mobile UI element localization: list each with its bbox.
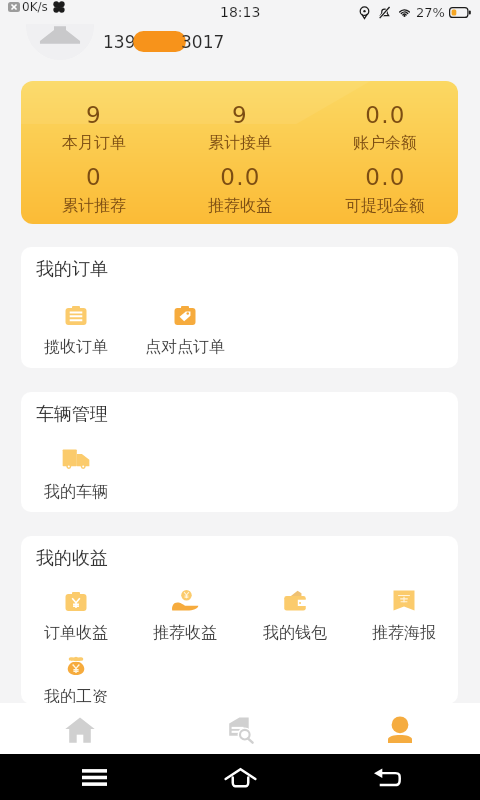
- staticText: 车辆管理: [36, 403, 108, 426]
- staticText: 0.0: [220, 164, 261, 191]
- staticText: 账户余额: [353, 133, 417, 153]
- staticText: 27%: [416, 5, 445, 20]
- staticText: 3017: [181, 32, 225, 52]
- button[interactable]: Back: [347, 754, 427, 800]
- button[interactable]: 9: [21, 81, 458, 224]
- staticText: 推荐海报: [372, 623, 436, 643]
- button[interactable]: 订单收益: [21, 585, 130, 643]
- staticText: 揽收订单: [44, 337, 108, 357]
- button[interactable]: Recents: [54, 754, 134, 800]
- button[interactable]: Avatar: [26, 0, 94, 60]
- button[interactable]: Home: [0, 703, 160, 754]
- button[interactable]: 我的车辆: [21, 444, 130, 502]
- staticText: 累计推荐: [62, 196, 126, 216]
- button[interactable]: 139: [103, 31, 233, 52]
- button[interactable]: 我的工资: [21, 649, 130, 704]
- button[interactable]: 推荐收益: [130, 585, 239, 643]
- staticText: 0K/s: [22, 0, 48, 14]
- staticText: 我的工资: [44, 687, 108, 704]
- button[interactable]: 揽收订单: [21, 299, 130, 357]
- button[interactable]: 点对点订单: [130, 299, 239, 357]
- button[interactable]: Profile: [320, 703, 480, 754]
- button[interactable]: 推荐海报: [349, 585, 458, 643]
- staticText: 累计接单: [208, 133, 272, 153]
- staticText: 9: [86, 102, 102, 129]
- staticText: 0.0: [365, 164, 406, 191]
- staticText: 订单收益: [44, 623, 108, 643]
- staticText: 点对点订单: [145, 337, 225, 357]
- staticText: 本月订单: [62, 133, 126, 153]
- button[interactable]: Home: [200, 754, 280, 800]
- staticText: 推荐收益: [153, 623, 217, 643]
- staticText: 我的订单: [36, 258, 108, 281]
- staticText: 0.0: [365, 102, 406, 129]
- staticText: 我的收益: [36, 547, 108, 570]
- staticText: 9: [232, 102, 248, 129]
- staticText: 18:13: [220, 4, 261, 20]
- button[interactable]: 我的钱包: [240, 585, 349, 643]
- staticText: 可提现金额: [345, 196, 425, 216]
- button[interactable]: Orders: [160, 703, 320, 754]
- staticText: 139: [103, 32, 136, 52]
- staticText: 我的车辆: [44, 482, 108, 502]
- staticText: 我的钱包: [263, 623, 327, 643]
- staticText: 推荐收益: [208, 196, 272, 216]
- staticText: 0: [86, 164, 102, 191]
